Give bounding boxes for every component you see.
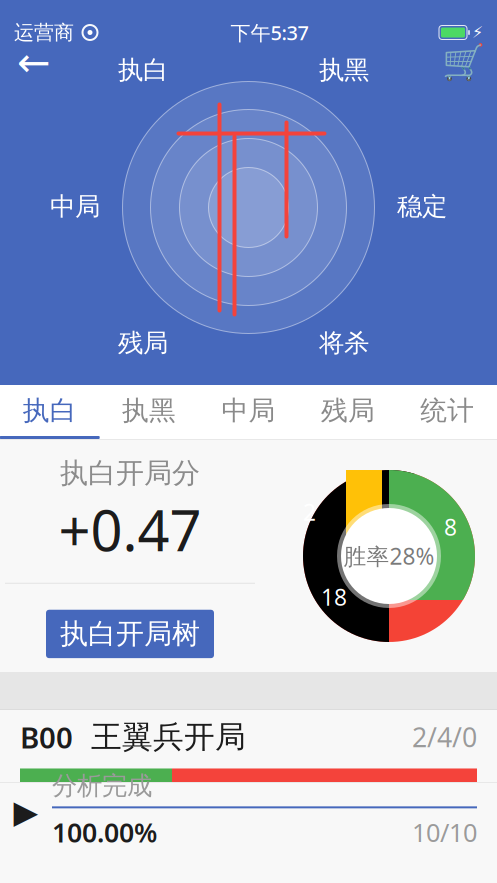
staticText: 王翼兵开局 — [91, 718, 246, 756]
staticText: 运营商 — [14, 20, 74, 45]
button[interactable]: 执白开局树 — [46, 610, 214, 658]
staticText: 执黑 — [319, 54, 369, 86]
staticText: 执白开局分 — [60, 456, 200, 490]
staticText: 执黑 — [122, 394, 176, 427]
button[interactable]: 中局 — [199, 385, 298, 439]
staticText: 执白 — [23, 394, 77, 427]
button[interactable]: 执黑 — [99, 385, 199, 439]
button[interactable]: 残局 — [298, 385, 398, 439]
staticText: 统计 — [420, 394, 474, 427]
staticText: 残局 — [118, 327, 168, 358]
staticText: 将杀 — [319, 327, 369, 358]
staticText: 10/10 — [412, 815, 477, 849]
staticText: ▶ — [13, 794, 38, 830]
staticText: 中局 — [50, 191, 100, 222]
staticText: B00 — [20, 717, 73, 756]
staticText: 下午5:37 — [230, 19, 308, 46]
staticText: ← — [17, 40, 51, 85]
staticText: 2 — [303, 497, 316, 527]
button[interactable]: B00 — [0, 710, 497, 782]
staticText: 分析完成 — [52, 770, 152, 801]
staticText: 18 — [321, 582, 347, 612]
staticText: 🛒 — [441, 43, 484, 82]
staticText: 中局 — [221, 394, 275, 427]
button[interactable]: 购物车 — [437, 38, 489, 86]
button[interactable]: 播放 — [0, 783, 52, 841]
staticText: 胜率28% — [343, 541, 434, 571]
staticText: 稳定 — [397, 191, 447, 222]
staticText: 残局 — [321, 394, 375, 427]
staticText: 执白开局树 — [60, 617, 200, 651]
button[interactable]: 返回 — [8, 38, 60, 86]
staticText: ⚡︎ — [472, 23, 483, 42]
staticText: +0.47 — [58, 492, 201, 567]
staticText: 100.00% — [52, 814, 157, 850]
staticText: 2/4/0 — [412, 719, 477, 755]
button[interactable]: 执白 — [0, 385, 99, 439]
staticText: 执白 — [118, 54, 168, 86]
button[interactable]: 统计 — [398, 385, 497, 439]
staticText: 8 — [444, 512, 457, 542]
